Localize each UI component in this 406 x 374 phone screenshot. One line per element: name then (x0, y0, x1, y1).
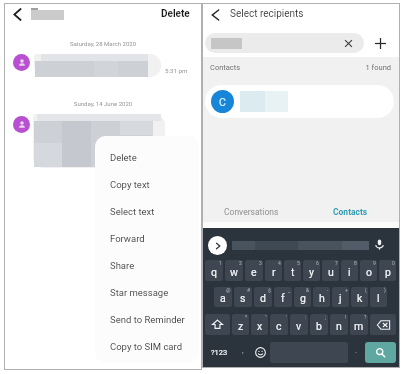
staticText: h (319, 292, 325, 304)
button[interactable]: m (350, 314, 368, 335)
button[interactable]: y (303, 260, 320, 281)
staticText: Conversations (224, 207, 279, 217)
staticText: Sunday, 14 June 2020 (4, 100, 202, 107)
button[interactable]: i (341, 260, 358, 281)
staticText: * (245, 314, 248, 320)
button[interactable]: Clear search (205, 33, 364, 53)
staticText: j (339, 292, 342, 304)
button[interactable]: q (205, 260, 223, 281)
button[interactable]: Expand suggestions (208, 236, 227, 255)
staticText: 1 found (202, 63, 391, 72)
staticText: 1 (219, 260, 222, 266)
staticText: k (357, 292, 363, 304)
button[interactable]: Emoji (252, 342, 268, 363)
staticText: u (328, 266, 334, 278)
staticText: 7 (335, 260, 338, 266)
other: Clear search (344, 39, 353, 48)
button[interactable]: x (251, 314, 268, 335)
button[interactable]: Back (206, 4, 225, 25)
button[interactable]: g (294, 287, 311, 307)
staticText: , (242, 346, 244, 355)
button[interactable]: , (236, 342, 250, 363)
button[interactable]: Copy to SIM card (95, 333, 199, 360)
button[interactable]: a (214, 287, 232, 307)
button[interactable]: Search (365, 342, 396, 363)
button[interactable]: . (350, 342, 363, 363)
staticText: Copy to SIM card (110, 341, 183, 352)
staticText: Copy text (110, 179, 150, 190)
staticText: Delete (110, 152, 137, 163)
button[interactable]: ?123 (205, 342, 234, 363)
staticText: g (300, 292, 306, 304)
button[interactable]: Delete (156, 5, 194, 23)
button[interactable]: l (370, 287, 387, 307)
staticText: Contacts (333, 207, 368, 217)
staticText: $ (268, 287, 271, 293)
staticText: & (306, 287, 310, 293)
staticText: ? (364, 314, 367, 320)
button[interactable]: h (313, 287, 330, 307)
staticText: ?123 (211, 348, 228, 357)
staticText: Select recipients (230, 8, 304, 20)
staticText: Delete (161, 8, 190, 20)
button[interactable]: e (245, 260, 263, 281)
button[interactable]: Shift (205, 314, 230, 335)
button[interactable]: w (225, 260, 243, 281)
staticText: s (240, 292, 246, 304)
button[interactable]: C (205, 85, 394, 118)
button[interactable]: f (274, 287, 292, 307)
staticText: n (336, 320, 342, 332)
staticText: 5:31 pm (165, 67, 188, 74)
staticText: Saturday, 28 March 2020 (4, 40, 202, 47)
button[interactable]: z (232, 314, 249, 335)
staticText: 0 (392, 260, 395, 266)
button[interactable]: Send to Reminder (95, 306, 199, 333)
button[interactable]: c (270, 314, 288, 335)
staticText: 3 (259, 260, 262, 266)
staticText: 4 (278, 260, 281, 266)
staticText: # (247, 287, 251, 293)
button[interactable]: Contacts (301, 200, 400, 224)
staticText: c (276, 320, 282, 332)
button[interactable]: k (351, 287, 368, 307)
button[interactable]: s (234, 287, 252, 307)
button[interactable]: n (330, 314, 348, 335)
staticText: e (251, 266, 257, 278)
staticText: 5 (297, 260, 300, 266)
button[interactable]: Add recipient (369, 32, 391, 54)
staticText: p (385, 266, 391, 278)
staticText: d (260, 292, 266, 304)
button[interactable]: Backspace (370, 314, 396, 335)
staticText: x (257, 320, 263, 332)
button[interactable]: b (310, 314, 328, 335)
button[interactable]: Select text (95, 198, 199, 225)
button[interactable]: Star message (95, 279, 199, 306)
button[interactable]: u (322, 260, 339, 281)
staticText: m (354, 320, 364, 332)
button[interactable]: Conversations (202, 200, 301, 224)
other: Voice input (373, 238, 386, 251)
button[interactable]: Copy text (95, 171, 199, 198)
staticText: w (230, 266, 238, 278)
staticText: ! (345, 314, 347, 320)
staticText: Send to Reminder (110, 314, 185, 325)
staticText: i (348, 266, 351, 278)
staticText: + (345, 287, 348, 293)
button[interactable]: r (265, 260, 282, 281)
button[interactable]: Delete (95, 144, 199, 171)
button[interactable]: Share (95, 252, 199, 279)
staticText: Forward (110, 233, 145, 244)
staticText: : (305, 314, 307, 320)
staticText: Contacts (210, 63, 241, 72)
button[interactable]: d (254, 287, 272, 307)
button[interactable]: Back (8, 4, 27, 25)
staticText: - (327, 287, 329, 293)
button[interactable]: v (290, 314, 308, 335)
button[interactable]: o (360, 260, 377, 281)
button[interactable]: t (284, 260, 301, 281)
button[interactable]: p (379, 260, 396, 281)
button[interactable]: j (332, 287, 349, 307)
staticText: ' (286, 314, 287, 320)
button[interactable]: Forward (95, 225, 199, 252)
